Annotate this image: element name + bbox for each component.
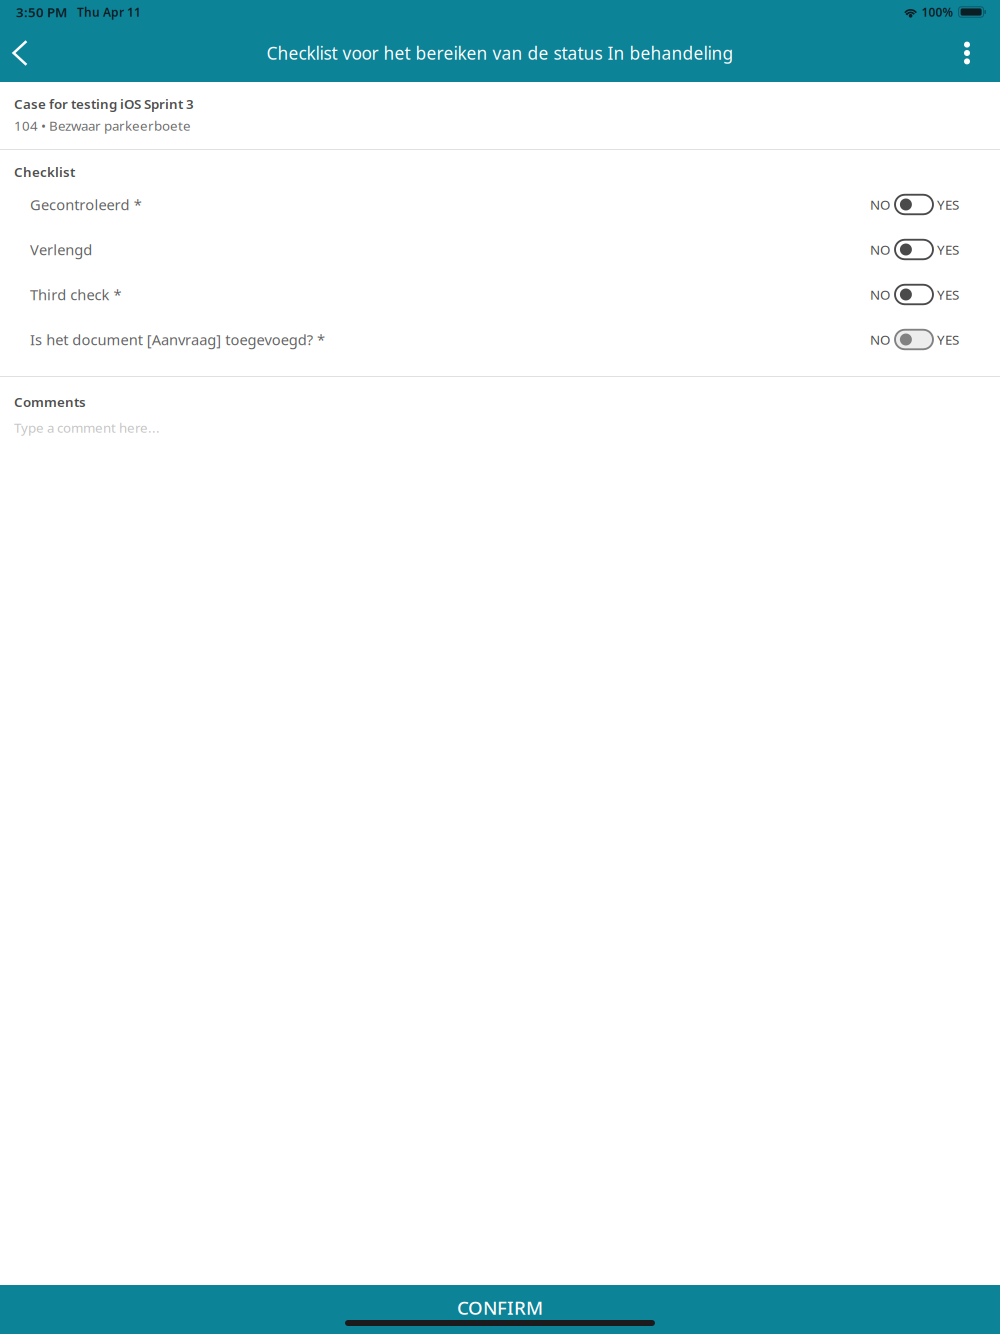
staticText: YES — [937, 196, 959, 213]
staticText: 100% — [922, 4, 954, 20]
staticText: YES — [937, 331, 959, 348]
staticText: NO — [870, 331, 890, 348]
button[interactable]: Verlengd — [0, 227, 1000, 272]
button[interactable]: More options — [947, 24, 987, 82]
staticText: Checklist — [14, 163, 75, 181]
staticText: Verlengd — [30, 240, 92, 259]
staticText: YES — [937, 241, 959, 258]
staticText: NO — [870, 286, 890, 303]
staticText: Thu Apr 11 — [77, 4, 141, 20]
staticText: Type a comment here... — [14, 419, 160, 436]
button[interactable]: CONFIRM — [0, 1285, 1000, 1334]
staticText: CONFIRM — [457, 1295, 543, 1320]
staticText: Comments — [14, 393, 86, 411]
button[interactable]: Back — [0, 24, 40, 82]
button[interactable]: Type a comment here... — [14, 419, 984, 479]
staticText: Is het document [Aanvraag] toegevoegd? * — [30, 330, 325, 349]
staticText: 104 • Bezwaar parkeerboete — [14, 117, 191, 134]
staticText: 3:50 PM — [16, 3, 67, 21]
staticText: Checklist voor het bereiken van de statu… — [266, 41, 733, 64]
staticText: Case for testing iOS Sprint 3 — [14, 95, 194, 113]
staticText: NO — [870, 241, 890, 258]
staticText: Third check * — [30, 285, 122, 304]
staticText: NO — [870, 196, 890, 213]
button[interactable]: Third check * — [0, 272, 1000, 317]
button[interactable]: Gecontroleerd * — [0, 182, 1000, 227]
button[interactable]: Is het document [Aanvraag] toegevoegd? * — [0, 317, 1000, 362]
staticText: YES — [937, 286, 959, 303]
staticText: Gecontroleerd * — [30, 195, 142, 214]
